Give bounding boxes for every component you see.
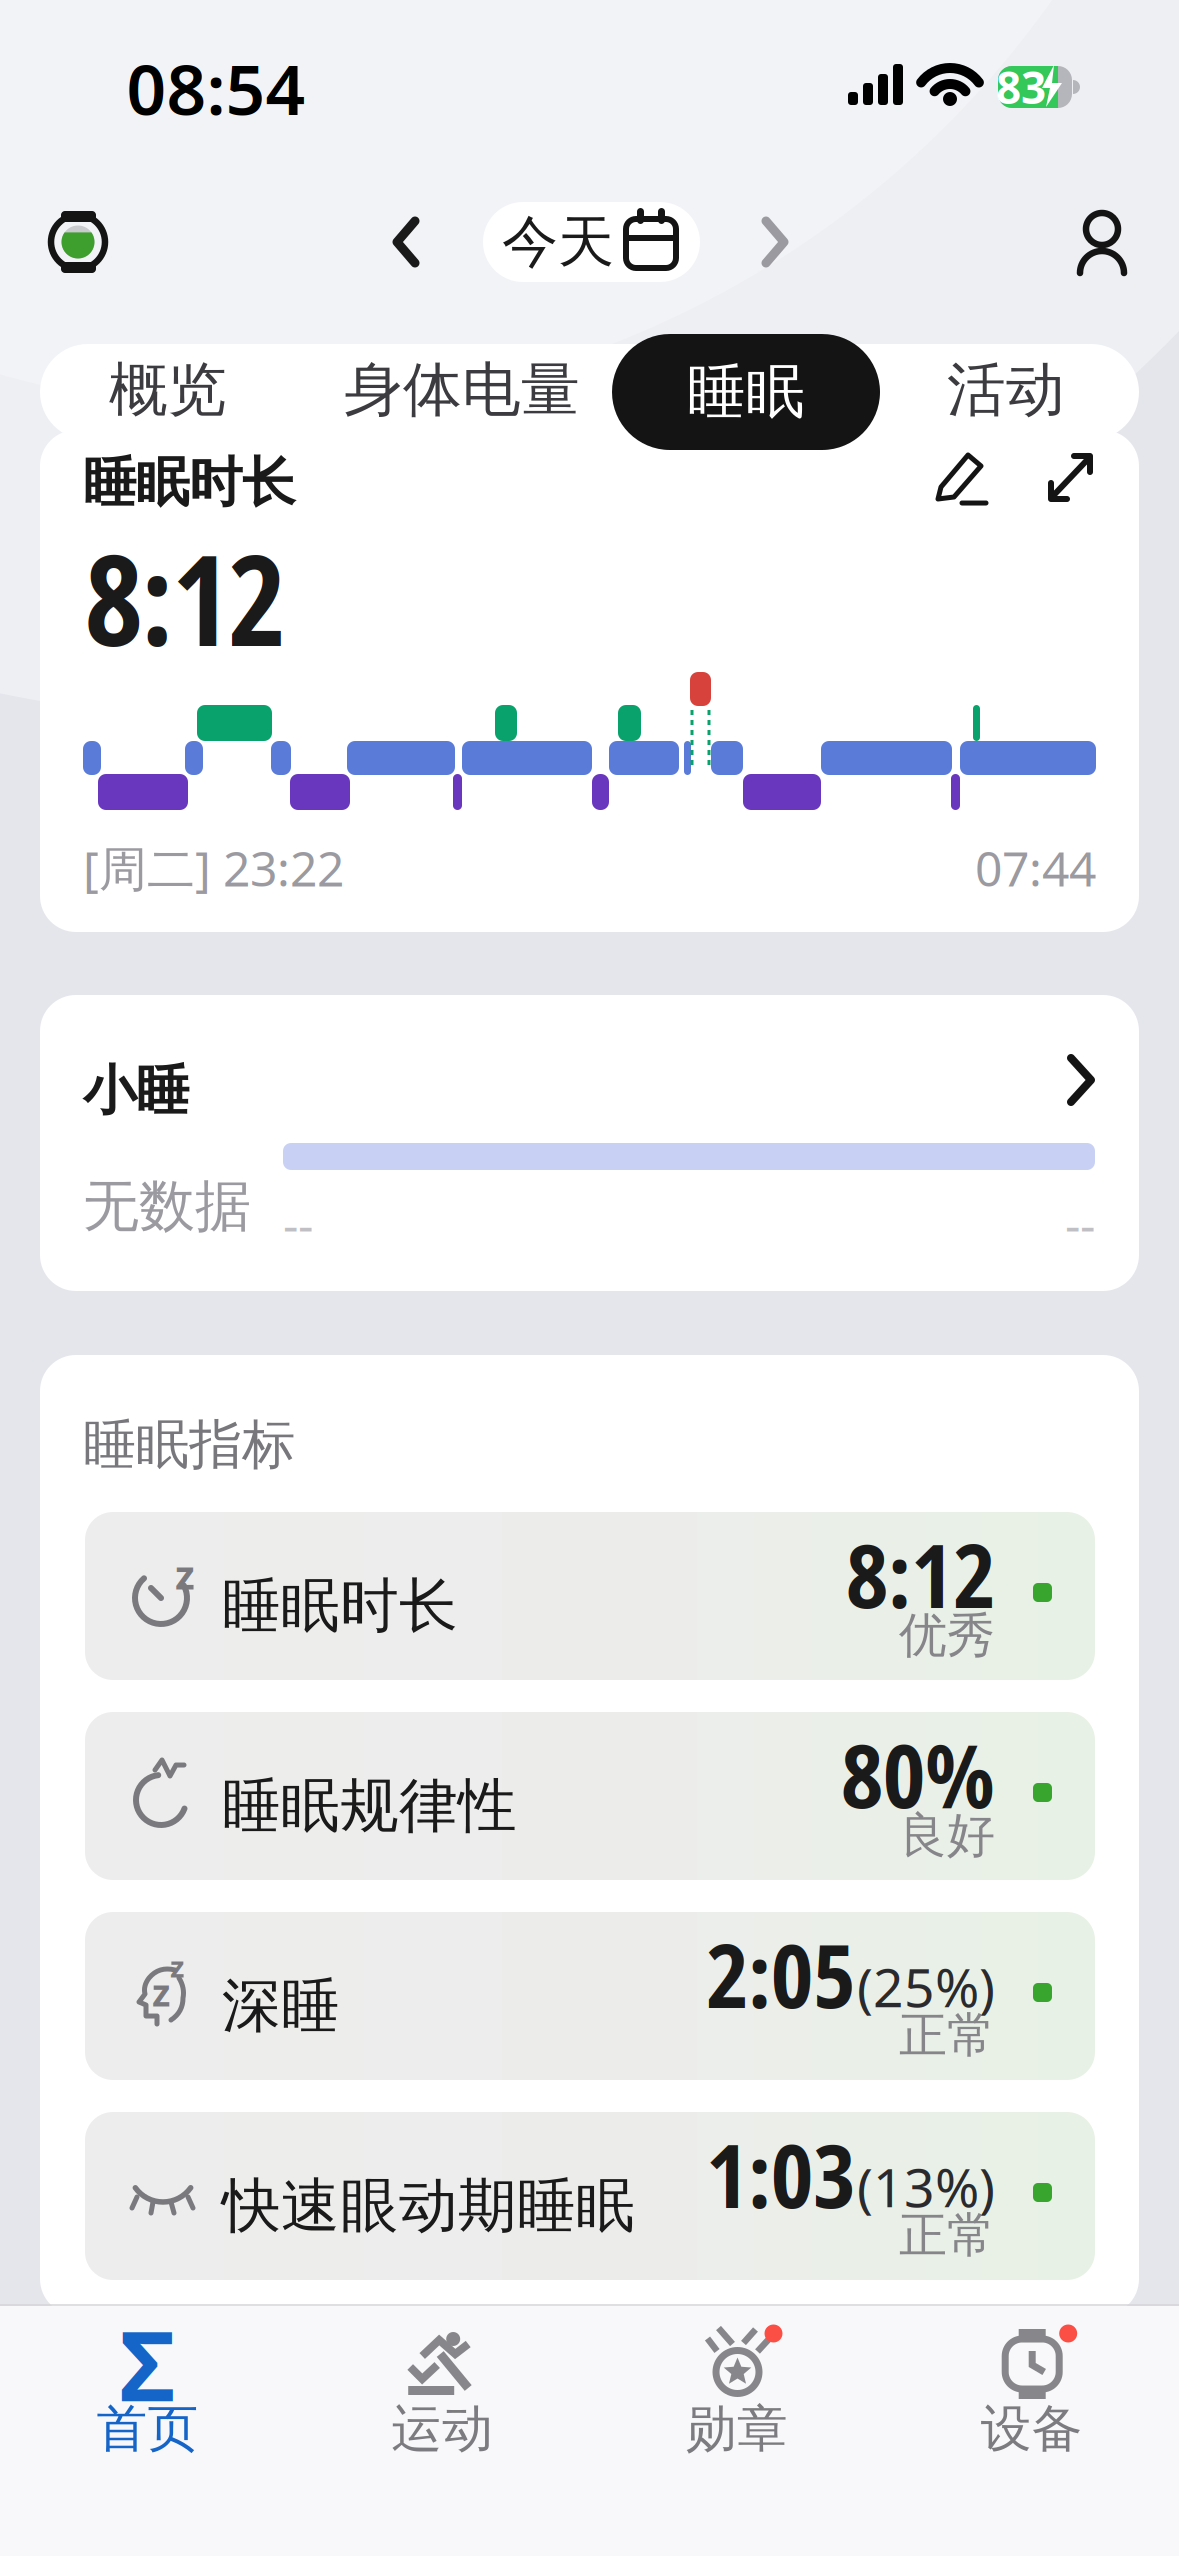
staticText: 正常 — [899, 2206, 995, 2265]
button[interactable] — [370, 204, 442, 280]
staticText: 2:05 — [706, 1914, 855, 2034]
staticText: 83 — [996, 58, 1046, 116]
button[interactable] — [85, 1912, 1095, 2080]
staticText: 快速眼动期睡眠 — [222, 2170, 635, 2242]
staticText: 睡眠时长 — [222, 1570, 458, 1642]
staticText: 8:12 — [846, 1514, 995, 1634]
button[interactable] — [739, 204, 811, 280]
button[interactable] — [85, 2112, 1095, 2280]
staticText: 无数据 — [83, 1172, 251, 1241]
button[interactable]: 勋章 — [590, 2306, 884, 2552]
button[interactable]: 活动 — [0, 0, 1179, 2556]
staticText: 小睡 — [83, 1058, 189, 1123]
staticText: 睡眠规律性 — [222, 1770, 517, 1842]
staticText: z — [170, 1946, 184, 1985]
button[interactable] — [45, 204, 111, 280]
staticText: z — [152, 1967, 170, 2017]
button[interactable] — [1031, 442, 1109, 514]
staticText: 活动 — [947, 354, 1065, 426]
staticText: 设备 — [981, 2398, 1083, 2460]
staticText: 80% — [841, 1714, 995, 1834]
staticText: 睡眠 — [687, 356, 805, 428]
staticText: Σ — [119, 2300, 175, 2428]
button[interactable]: 身体电量 — [0, 0, 1179, 2556]
staticText: 身体电量 — [344, 354, 580, 426]
staticText: 运动 — [391, 2398, 493, 2460]
staticText: 优秀 — [899, 1606, 995, 1665]
button[interactable] — [40, 995, 1139, 1291]
staticText: 今天 — [502, 208, 614, 276]
staticText: [周二] 23:22 — [83, 836, 344, 900]
button[interactable]: 设备 — [885, 2306, 1179, 2552]
staticText: (25%) — [857, 1951, 995, 2022]
staticText: 睡眠指标 — [83, 1412, 295, 1477]
button[interactable]: 运动 — [295, 2306, 589, 2552]
staticText: 8:12 — [85, 512, 286, 683]
button[interactable]: 睡眠 — [0, 0, 1179, 2556]
staticText: 首页 — [96, 2398, 198, 2460]
staticText: (13%) — [857, 2151, 995, 2222]
staticText: 08:54 — [126, 42, 305, 134]
button[interactable] — [85, 1712, 1095, 1880]
button[interactable] — [923, 442, 1001, 514]
staticText: z — [175, 1547, 195, 1600]
staticText: 概览 — [109, 354, 227, 426]
staticText: 正常 — [899, 2006, 995, 2065]
staticText: 勋章 — [686, 2398, 788, 2460]
button[interactable]: Σ — [0, 2306, 294, 2552]
button[interactable] — [483, 202, 700, 282]
staticText: -- — [1065, 1192, 1095, 1256]
staticText: 睡眠时长 — [83, 450, 295, 515]
staticText: -- — [283, 1192, 313, 1256]
button[interactable] — [1066, 207, 1138, 289]
staticText: 1:03 — [706, 2114, 855, 2234]
button[interactable]: 概览 — [0, 0, 1179, 2556]
staticText: 深睡 — [222, 1970, 340, 2042]
staticText: 07:44 — [975, 836, 1096, 900]
staticText: 良好 — [899, 1806, 995, 1865]
button[interactable] — [85, 1512, 1095, 1680]
